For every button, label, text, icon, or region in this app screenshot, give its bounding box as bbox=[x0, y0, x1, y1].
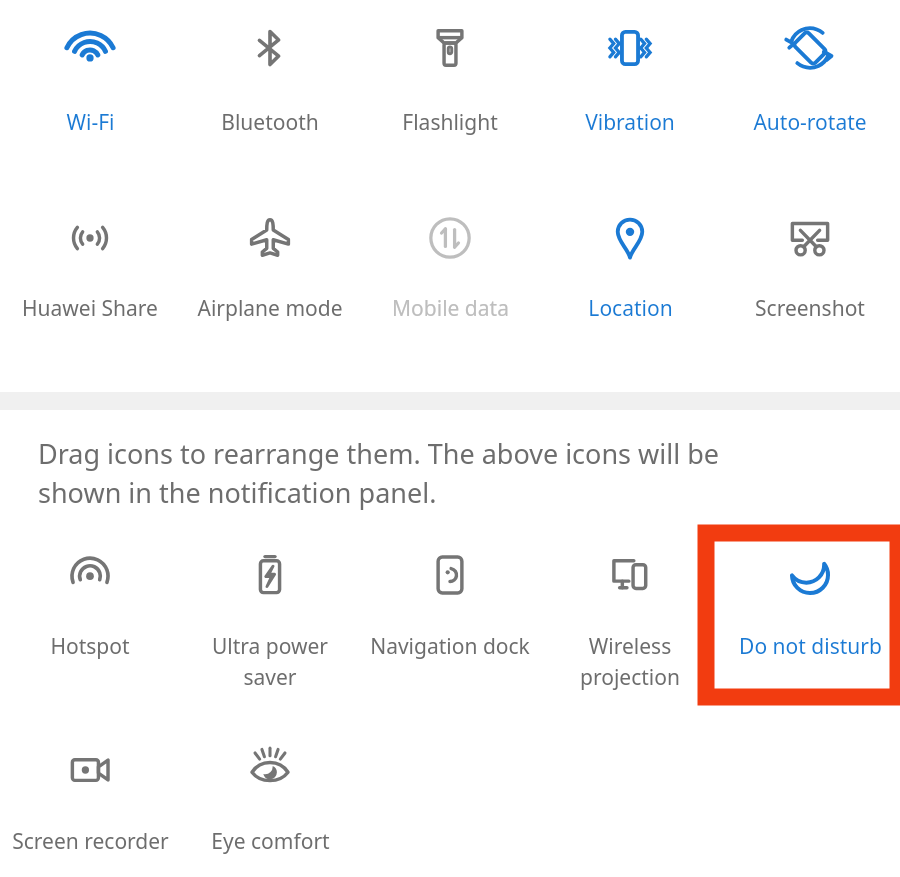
staticText: Screenshot bbox=[755, 294, 865, 323]
button[interactable]: Flashlight bbox=[360, 0, 540, 170]
button[interactable]: Huawei Share bbox=[0, 190, 180, 360]
button[interactable]: Screenshot bbox=[720, 190, 900, 360]
button[interactable]: Airplane mode bbox=[180, 190, 360, 360]
button[interactable]: Mobile data bbox=[360, 190, 540, 360]
button[interactable]: Eye comfort bbox=[180, 735, 360, 877]
button[interactable]: Wi-Fi bbox=[0, 0, 180, 170]
staticText: Flashlight bbox=[402, 108, 498, 137]
staticText: Eye comfort bbox=[211, 827, 330, 856]
staticText: Hotspot bbox=[50, 632, 130, 661]
staticText: Airplane mode bbox=[197, 294, 343, 323]
button[interactable]: Ultra power saver bbox=[180, 540, 360, 715]
staticText: Bluetooth bbox=[221, 108, 319, 137]
staticText: Auto-rotate bbox=[753, 108, 867, 137]
button[interactable]: Auto-rotate bbox=[720, 0, 900, 170]
staticText: Navigation dock bbox=[370, 632, 530, 661]
button[interactable]: Vibration bbox=[540, 0, 720, 170]
button[interactable]: Hotspot bbox=[0, 540, 180, 715]
button[interactable]: Navigation dock bbox=[360, 540, 540, 715]
staticText: Do not disturb bbox=[739, 632, 882, 661]
staticText: Location bbox=[588, 294, 673, 323]
button[interactable]: Screen recorder bbox=[0, 735, 180, 877]
staticText: Mobile data bbox=[392, 294, 509, 323]
staticText: Vibration bbox=[585, 108, 675, 137]
staticText: Wi-Fi bbox=[66, 108, 115, 137]
button[interactable]: Wireless projection bbox=[540, 540, 720, 715]
staticText: Screen recorder bbox=[12, 827, 169, 856]
staticText: Drag icons to rearrange them. The above … bbox=[38, 435, 798, 511]
staticText: Ultra power saver bbox=[186, 632, 354, 691]
staticText: Wireless projection bbox=[546, 632, 714, 691]
button[interactable]: Do not disturb bbox=[720, 540, 900, 715]
staticText: Huawei Share bbox=[22, 294, 158, 323]
button[interactable]: Location bbox=[540, 190, 720, 360]
button[interactable]: Bluetooth bbox=[180, 0, 360, 170]
